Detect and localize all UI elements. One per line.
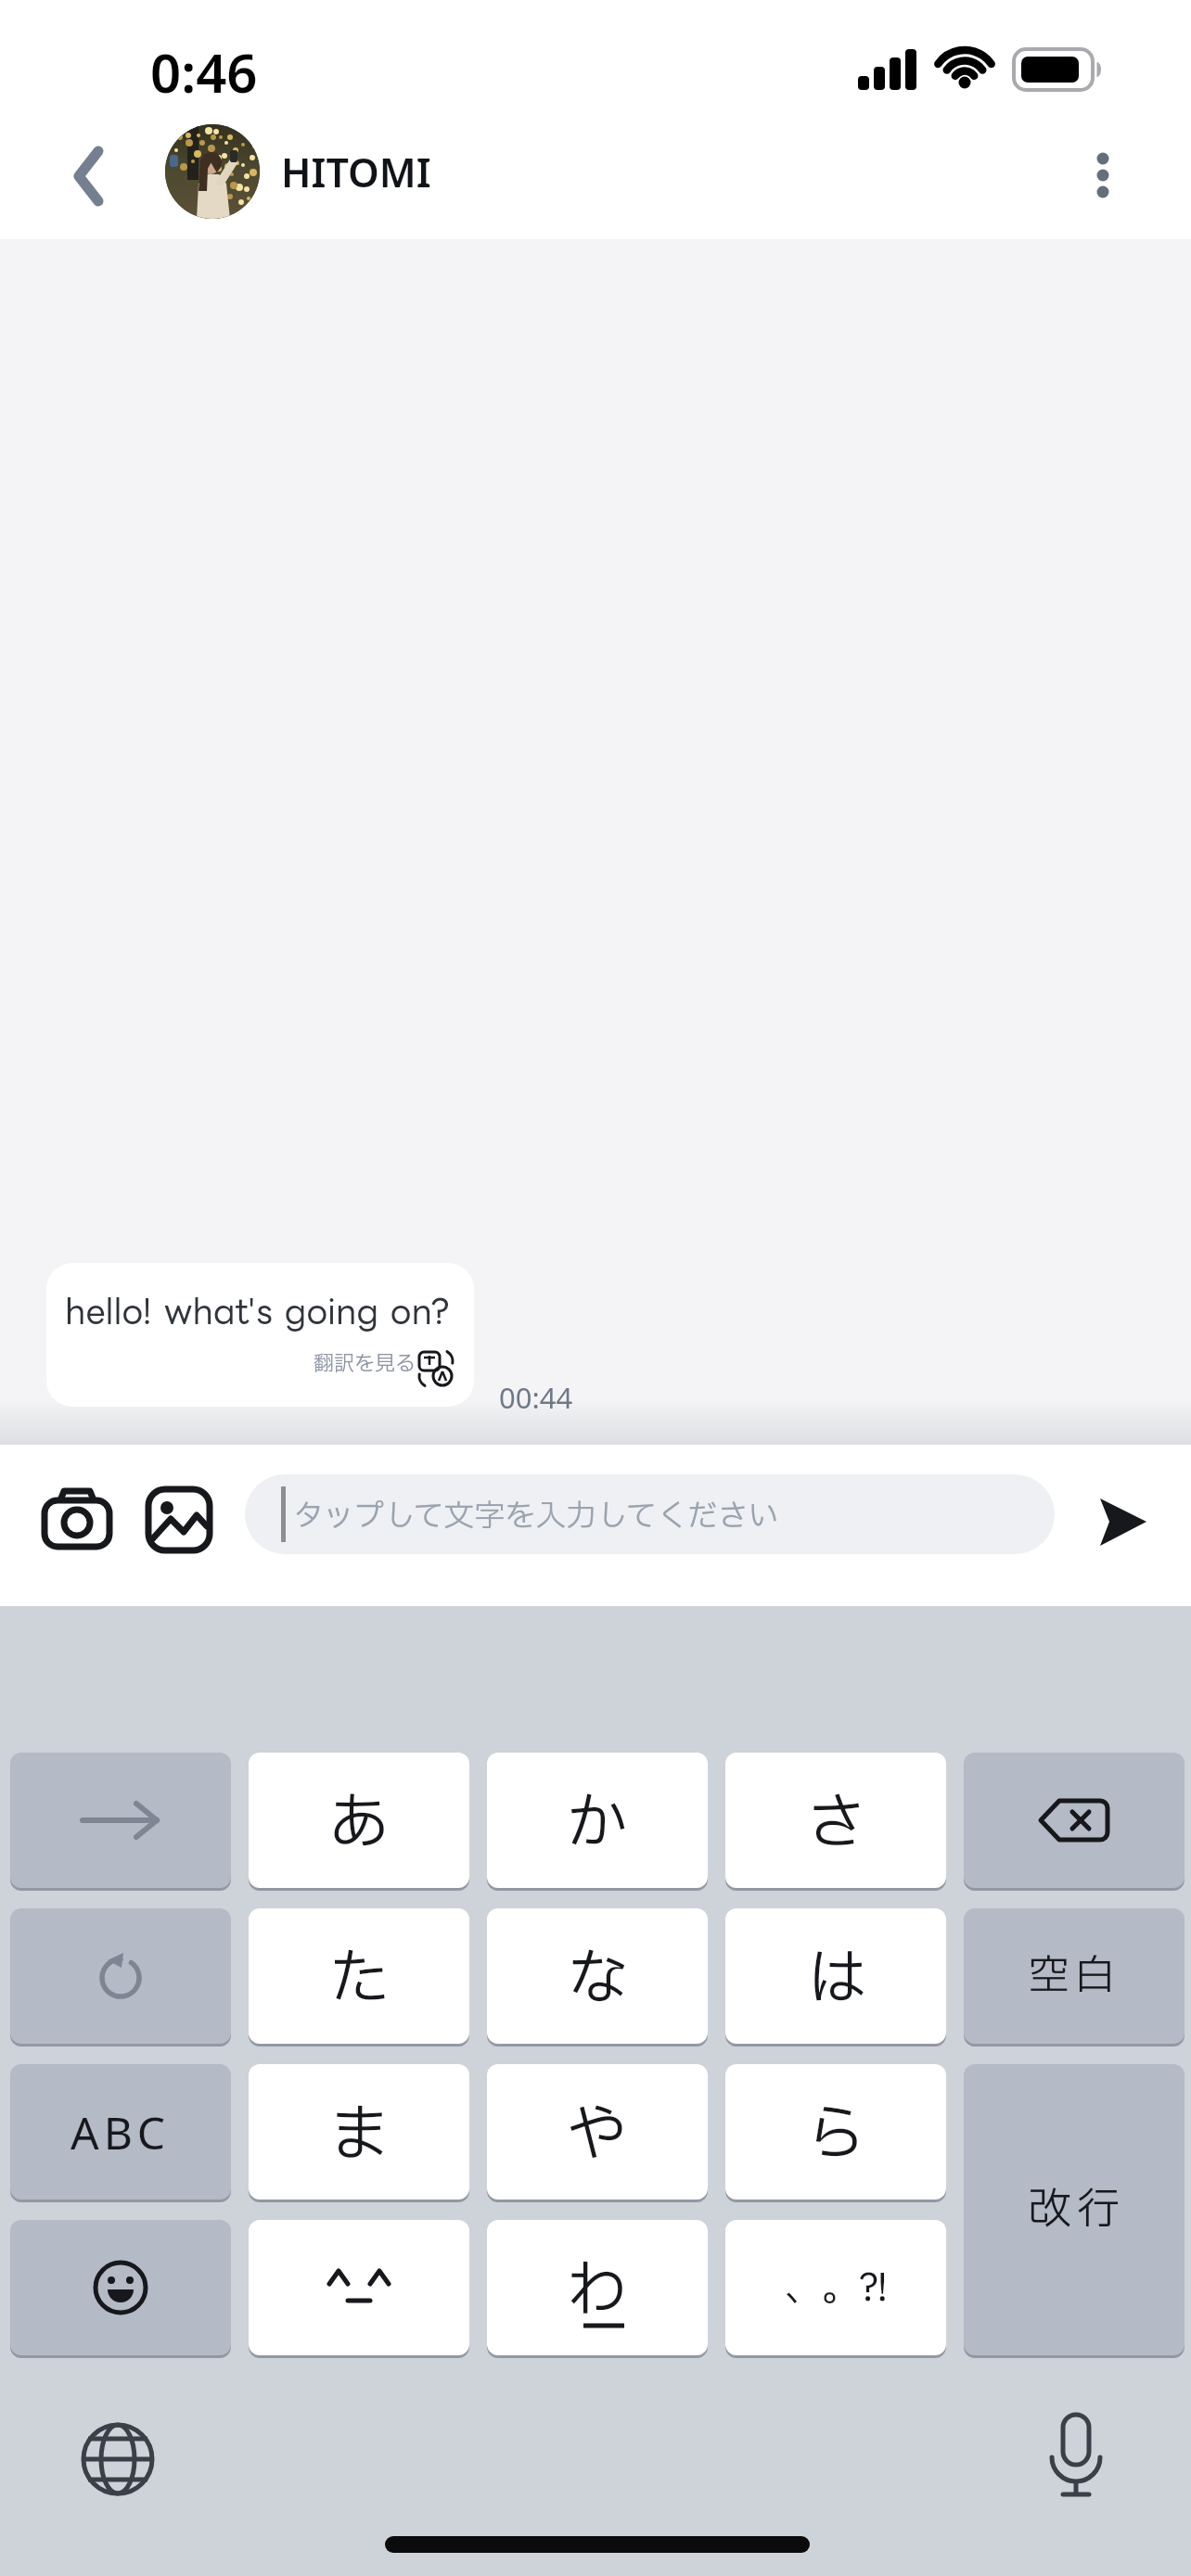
button[interactable]	[165, 124, 260, 219]
button[interactable]: か	[487, 1753, 708, 1888]
button[interactable]: タップして文字を入力してください	[245, 1474, 1055, 1554]
button[interactable]	[10, 1908, 231, 2044]
button[interactable]: 、。?!	[725, 2220, 946, 2355]
button[interactable]: さ	[725, 1753, 946, 1888]
button[interactable]: 改行	[964, 2064, 1185, 2355]
staticText: ら	[805, 2090, 866, 2182]
staticText: ABC	[70, 2102, 171, 2162]
staticText: 0:46	[150, 35, 258, 108]
button[interactable]: あ	[249, 1753, 469, 1888]
staticText: 00:44	[499, 1378, 573, 1417]
staticText: わ	[567, 2246, 628, 2338]
button[interactable]: や	[487, 2064, 708, 2200]
button[interactable]: わ	[487, 2220, 708, 2355]
staticText: 空白	[1029, 1945, 1120, 2007]
button[interactable]: 空白	[964, 1908, 1185, 2044]
staticText: は	[805, 1934, 866, 2026]
button[interactable]: ら	[725, 2064, 946, 2200]
staticText: か	[567, 1779, 628, 1870]
staticText: タップして文字を入力してください	[293, 1494, 779, 1539]
staticText: 、。?!	[785, 2259, 887, 2317]
staticText: 翻訳を見る	[314, 1349, 416, 1380]
button[interactable]	[56, 130, 130, 223]
button[interactable]	[1039, 2411, 1113, 2504]
staticText: た	[328, 1934, 390, 2026]
button[interactable]: ABC	[10, 2064, 231, 2200]
staticText: あ	[328, 1779, 390, 1870]
button[interactable]: な	[487, 1908, 708, 2044]
staticText: hello! what's going on?	[65, 1292, 451, 1329]
button[interactable]	[46, 1263, 474, 1407]
staticText: 改行	[1026, 2178, 1122, 2242]
button[interactable]	[145, 1486, 213, 1554]
button[interactable]	[10, 2220, 231, 2355]
button[interactable]: は	[725, 1908, 946, 2044]
staticText: や	[567, 2090, 628, 2182]
staticText: さ	[805, 1779, 866, 1870]
staticText: ま	[328, 2090, 390, 2182]
staticText: HITOMI	[281, 145, 431, 199]
button[interactable]	[249, 2220, 469, 2355]
button[interactable]	[79, 2420, 157, 2498]
button[interactable]: ま	[249, 2064, 469, 2200]
staticText: な	[567, 1934, 628, 2026]
button[interactable]	[964, 1753, 1185, 1888]
button[interactable]	[1085, 1488, 1159, 1555]
button[interactable]	[10, 1753, 231, 1888]
button[interactable]	[37, 1482, 119, 1556]
button[interactable]	[1067, 130, 1141, 223]
button[interactable]: た	[249, 1908, 469, 2044]
